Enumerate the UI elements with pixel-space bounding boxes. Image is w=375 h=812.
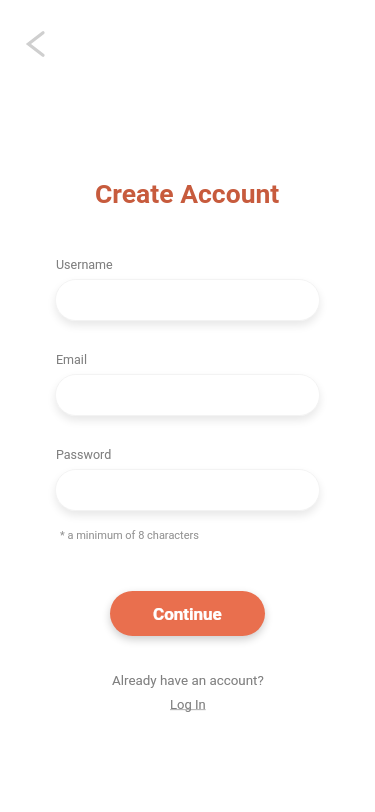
staticText: Username: [56, 257, 113, 272]
staticText: Password: [56, 447, 112, 462]
button[interactable]: Continue: [110, 591, 265, 636]
button[interactable]: Back: [14, 23, 56, 65]
staticText: Continue: [153, 604, 222, 624]
staticText: Log In: [170, 697, 206, 712]
staticText: Email: [56, 352, 87, 367]
button[interactable]: Log In: [160, 691, 216, 718]
staticText: Already have an account?: [112, 673, 264, 689]
staticText: * a minimum of 8 characters: [60, 529, 199, 542]
staticText: Create Account: [95, 178, 280, 209]
